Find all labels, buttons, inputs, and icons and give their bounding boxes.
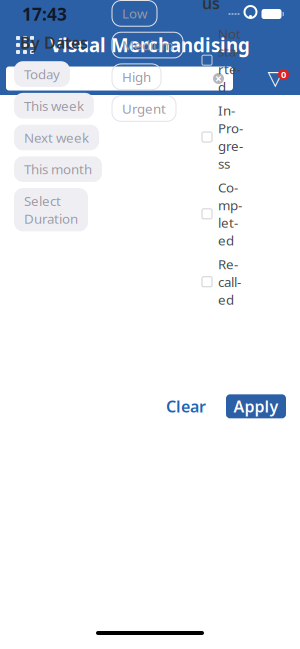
button[interactable]: This month [14,156,102,182]
staticText: By Status [202,0,237,14]
staticText: 17:43 [22,2,67,25]
button[interactable]: Next week [14,125,99,150]
staticText: Medium [122,36,173,54]
staticText: Apply [233,396,278,417]
staticText: Visual Merchandising [50,33,250,57]
button[interactable]: Medium [112,32,183,58]
button[interactable]: Clear [154,389,218,424]
staticText: By Dates [20,32,88,53]
staticText: Clear [166,396,206,417]
staticText: Next week [24,129,89,146]
button[interactable]: Select Duration [14,188,88,231]
staticText: Today [24,65,60,83]
button[interactable]: Urgent [112,96,176,121]
staticText: High [122,68,151,86]
button[interactable]: High [112,64,161,90]
staticText: This month [24,160,92,178]
button[interactable]: Low [112,0,157,26]
staticText: In-Progress [218,102,243,172]
button[interactable]: Apply [226,394,286,418]
button[interactable]: This week [14,93,94,119]
staticText: Not started [218,25,241,96]
staticText: Urgent [122,100,166,117]
staticText: Select Duration [24,192,78,227]
button[interactable]: Completed [202,175,242,252]
staticText: ▽ [267,67,282,89]
button[interactable]: Recalled [202,252,241,311]
button[interactable]: Today [14,61,70,87]
staticText: Low [122,4,147,22]
staticText: Completed [218,178,242,249]
button[interactable]: Not started [202,22,241,99]
button[interactable]: In-Progress [202,99,243,175]
staticText: Search [16,68,67,89]
staticText: This week [24,97,84,115]
button[interactable]: Filter [256,63,296,93]
staticText: × [215,70,222,86]
button[interactable]: Apps [8,28,42,62]
staticText: Recalled [218,255,241,308]
staticText: 0 [281,68,286,81]
